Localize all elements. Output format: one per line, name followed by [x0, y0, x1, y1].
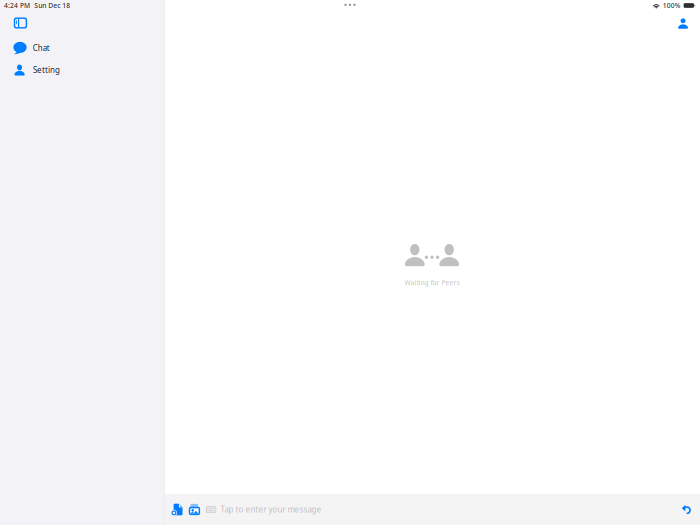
button[interactable]: Chat [0, 41, 164, 55]
staticText: Setting [33, 65, 60, 75]
button[interactable]: Tap to enter your message [206, 494, 682, 525]
staticText: Tap to enter your message [220, 504, 321, 515]
staticText: 4:24 PM [4, 1, 30, 10]
staticText: 100% [663, 1, 681, 10]
staticText: Waiting for Peers [404, 278, 459, 287]
staticText: Sun Dec 18 [34, 1, 70, 10]
button[interactable]: Undo [682, 494, 700, 525]
button[interactable]: Attach file [164, 494, 189, 525]
button[interactable]: Hide Sidebar [0, 17, 164, 29]
button[interactable]: Add photo [189, 494, 206, 525]
staticText: Chat [33, 43, 50, 53]
button[interactable]: Setting [0, 63, 164, 77]
button[interactable]: Participants [678, 13, 700, 29]
